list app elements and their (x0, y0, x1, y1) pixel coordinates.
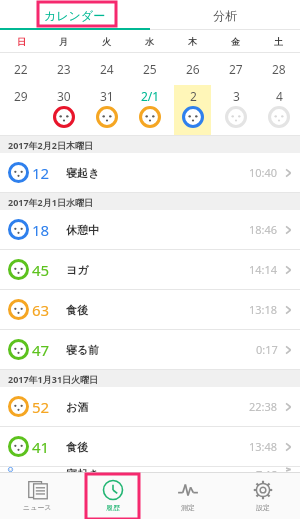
staticText: 食後 (66, 440, 88, 454)
staticText: 23 (57, 61, 71, 77)
button[interactable]: 分析 (150, 0, 300, 30)
staticText: 31 (100, 88, 114, 104)
button[interactable]: 47 (0, 330, 300, 369)
button[interactable]: 30 (42, 85, 85, 135)
button[interactable]: 29 (0, 85, 42, 135)
staticText: 履歴 (106, 503, 120, 512)
staticText: 24 (100, 61, 114, 77)
staticText: 食後 (66, 303, 88, 317)
staticText: 土 (274, 36, 283, 47)
staticText: ニュース (23, 503, 52, 512)
button[interactable]: 18 (0, 210, 300, 249)
button[interactable]: カレンダー (0, 0, 150, 30)
staticText: 12 (32, 163, 50, 183)
staticText: 分析 (213, 8, 237, 23)
staticText: 日 (17, 36, 26, 47)
button[interactable]: 28 (257, 53, 300, 85)
staticText: 2 (190, 88, 197, 104)
staticText: 45 (32, 260, 50, 280)
button[interactable]: 63 (0, 290, 300, 329)
staticText: 設定 (256, 503, 270, 512)
button[interactable]: 12 (0, 153, 300, 192)
staticText: 22 (14, 61, 28, 77)
staticText: 25 (143, 61, 157, 77)
button[interactable]: 45 (0, 250, 300, 289)
staticText: 4 (276, 88, 283, 104)
button[interactable]: 1 (0, 467, 300, 472)
staticText: 10:40 (249, 165, 278, 180)
staticText: 26 (186, 61, 200, 77)
staticText: 41 (32, 437, 50, 457)
staticText: 13:18 (249, 302, 278, 317)
staticText: 2017年2月1日水曜日 (8, 196, 93, 208)
button[interactable]: 設定 (225, 472, 300, 519)
staticText: 0:17 (256, 342, 278, 357)
staticText: 7:12 (256, 467, 278, 472)
staticText: 52 (32, 397, 50, 417)
button[interactable]: 25 (128, 53, 171, 85)
staticText: 27 (229, 61, 243, 77)
staticText: 63 (32, 300, 50, 320)
staticText: 18 (32, 220, 50, 240)
button[interactable]: 41 (0, 427, 300, 466)
button[interactable]: 52 (0, 387, 300, 426)
button[interactable]: 履歴 (75, 472, 150, 519)
button[interactable]: 24 (85, 53, 128, 85)
staticText: 水 (145, 36, 154, 47)
staticText: 2017年1月31日火曜日 (8, 373, 99, 385)
staticText: ヨガ (66, 263, 89, 277)
staticText: 金 (231, 36, 240, 47)
button[interactable]: 2 (171, 85, 214, 135)
staticText: 寝る前 (66, 343, 100, 357)
staticText: 寝起き (66, 166, 100, 180)
staticText: 月 (59, 36, 68, 47)
button[interactable]: 23 (42, 53, 85, 85)
staticText: 29 (14, 88, 28, 104)
staticText: 13:48 (249, 439, 278, 454)
staticText: 測定 (181, 503, 195, 512)
staticText: 木 (188, 36, 197, 47)
staticText: 28 (272, 61, 286, 77)
button[interactable]: 4 (257, 85, 300, 135)
staticText: 14:14 (249, 262, 278, 277)
staticText: 47 (32, 340, 50, 360)
button[interactable]: 2/1 (128, 85, 171, 135)
staticText: 3 (233, 88, 240, 104)
staticText: 22:38 (249, 399, 278, 414)
staticText: 2/1 (141, 88, 160, 104)
button[interactable]: 31 (85, 85, 128, 135)
button[interactable]: 22 (0, 53, 42, 85)
button[interactable]: 測定 (150, 472, 225, 519)
staticText: 火 (102, 36, 111, 47)
staticText: 2017年2月2日木曜日 (8, 139, 93, 151)
staticText: 休憩中 (66, 223, 99, 237)
button[interactable]: 3 (214, 85, 257, 135)
button[interactable]: ニュース (0, 472, 75, 519)
staticText: お酒 (66, 400, 89, 414)
staticText: 18:46 (249, 222, 278, 237)
button[interactable]: 26 (171, 53, 214, 85)
button[interactable]: 27 (214, 53, 257, 85)
staticText: 寝起き (66, 467, 100, 472)
staticText: カレンダー (44, 8, 106, 23)
staticText: 30 (57, 88, 71, 104)
